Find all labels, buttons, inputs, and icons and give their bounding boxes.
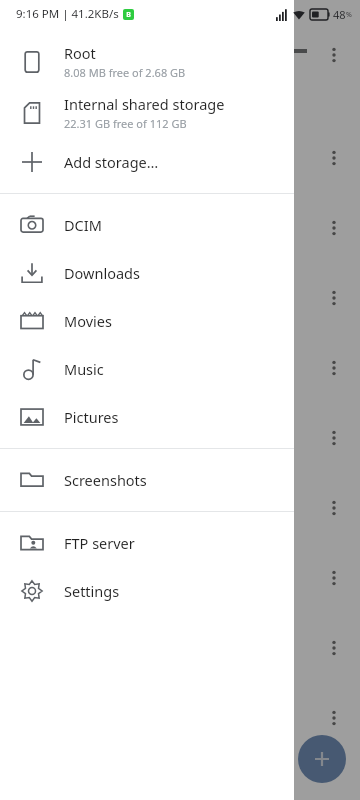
button[interactable]: More options [325,568,343,588]
staticText: 8.08 MB free of 2.68 GB [64,65,186,80]
button[interactable]: Pictures [0,393,294,441]
staticText: Screenshots [64,470,147,490]
button[interactable]: More options [325,638,343,658]
staticText: Root [64,43,96,63]
button[interactable]: More options [325,358,343,378]
button[interactable]: More options [325,45,343,65]
staticText: 48 [333,7,346,22]
staticText: 22.31 GB free of 112 GB [64,116,187,131]
staticText: Pictures [64,407,119,427]
staticText: Downloads [64,263,140,283]
staticText: Settings [64,581,120,601]
button[interactable]: Music [0,345,294,393]
button[interactable]: Movies [0,297,294,345]
staticText: 9:16 PM | 41.2KB/s [16,6,119,22]
staticText: Music [64,359,104,379]
button[interactable]: More options [325,498,343,518]
button[interactable]: DCIM [0,201,294,249]
staticText: Movies [64,311,112,331]
button[interactable]: More options [325,708,343,728]
button[interactable]: Downloads [0,249,294,297]
button[interactable]: Add storage… [0,138,294,186]
staticText: Add storage… [64,152,159,172]
staticText: FTP server [64,533,135,553]
button[interactable]: More options [325,148,343,168]
button[interactable]: More options [325,288,343,308]
staticText: DCIM [64,215,102,235]
button[interactable]: Internal shared storage [0,87,294,138]
staticText: B [126,10,131,20]
staticText: % [346,10,352,20]
button[interactable]: Root [0,36,294,87]
button[interactable]: Settings [0,567,294,615]
button[interactable]: FTP server [0,519,294,567]
button[interactable]: Screenshots [0,456,294,504]
button[interactable]: More options [325,428,343,448]
button[interactable]: More options [325,218,343,238]
button[interactable]: Add [298,735,346,783]
staticText: Internal shared storage [64,94,225,114]
